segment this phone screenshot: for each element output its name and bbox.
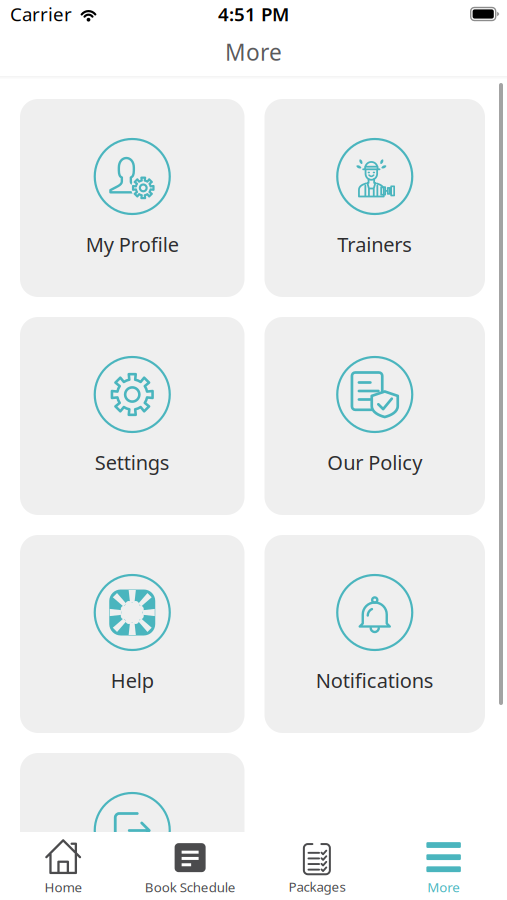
staticText: 4:51 PM [218, 2, 289, 26]
staticText: More [225, 37, 282, 67]
button[interactable]: Book Schedule [127, 832, 254, 900]
button[interactable]: Trainers [264, 99, 485, 297]
button[interactable]: My Profile [20, 99, 244, 297]
staticText: Trainers [337, 231, 412, 258]
button[interactable]: Home [0, 832, 127, 900]
button[interactable]: Packages [253, 832, 380, 900]
staticText: Home [44, 878, 82, 896]
button[interactable]: Our Policy [264, 317, 485, 515]
staticText: Settings [95, 449, 170, 476]
staticText: Logout [100, 885, 165, 900]
staticText: My Profile [86, 231, 179, 258]
button[interactable]: Help [20, 535, 244, 733]
button[interactable]: Settings [20, 317, 244, 515]
button[interactable]: Logout [20, 753, 244, 900]
button[interactable]: More [380, 832, 507, 900]
button[interactable]: Notifications [264, 535, 485, 733]
staticText: Carrier [10, 2, 72, 26]
staticText: Notifications [316, 667, 434, 694]
staticText: More [427, 878, 460, 896]
staticText: Our Policy [327, 449, 422, 476]
staticText: Packages [288, 878, 345, 895]
staticText: Book Schedule [145, 878, 236, 896]
staticText: Help [111, 667, 154, 694]
